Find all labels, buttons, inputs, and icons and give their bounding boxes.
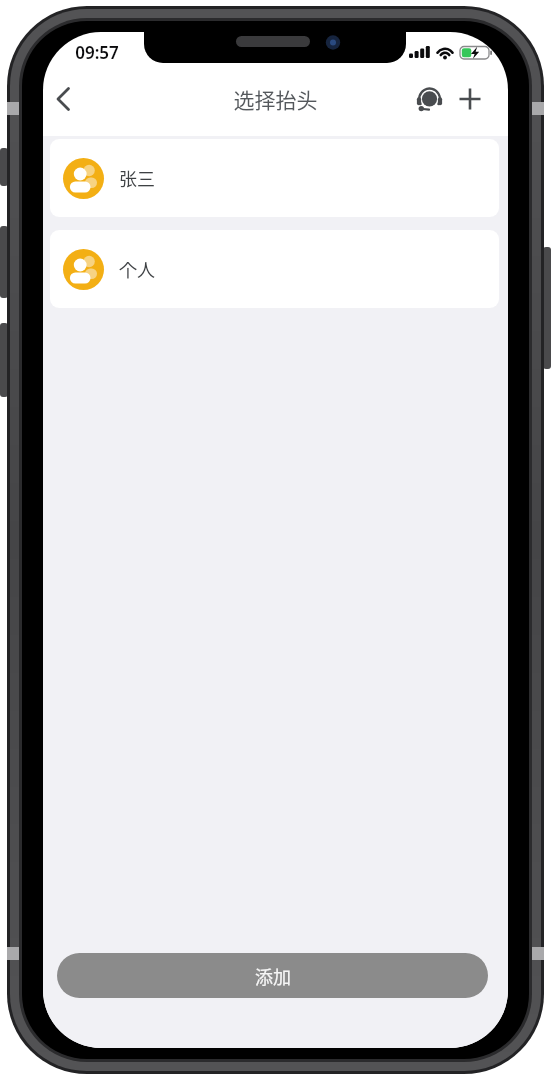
button[interactable] [459, 88, 481, 110]
staticText: 添加 [255, 963, 291, 989]
staticText: 个人 [119, 256, 155, 282]
button[interactable]: 个人 [50, 230, 499, 308]
button[interactable]: 添加 [57, 953, 488, 998]
button[interactable]: 张三 [50, 139, 499, 217]
staticText: 选择抬头 [43, 84, 508, 114]
button[interactable] [53, 85, 75, 113]
staticText: 张三 [119, 165, 155, 191]
button[interactable] [416, 86, 443, 113]
staticText: 09:57 [67, 41, 127, 64]
